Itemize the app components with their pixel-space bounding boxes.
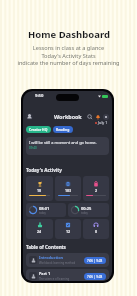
button[interactable]: Search (87, 114, 93, 120)
staticText: 24 (37, 229, 42, 234)
staticText: Reading (56, 127, 70, 132)
button[interactable]: Reading (53, 126, 73, 133)
staticText: Introduction (39, 255, 64, 260)
button[interactable]: 0 (83, 219, 109, 239)
staticText: I will be still a moment and go home. (29, 140, 97, 145)
button[interactable]: Notifications (95, 114, 101, 120)
button[interactable]: More (103, 114, 109, 120)
button[interactable]: 08:01 (26, 203, 66, 217)
button[interactable]: Creator HQ (26, 126, 51, 133)
button[interactable]: 183 (55, 176, 81, 201)
staticText: 183 (65, 188, 72, 193)
button[interactable]: 7:06 | 9:28 (84, 273, 106, 280)
staticText: July 1 (98, 120, 108, 125)
staticText: 2 (95, 188, 98, 193)
button[interactable]: Part 1 (26, 269, 109, 281)
staticText: The science of learning (39, 277, 70, 281)
staticText: 9:50 (35, 93, 44, 99)
staticText: Today's Activity (26, 167, 62, 173)
button[interactable]: 00:25 (68, 203, 109, 217)
button[interactable]: Profile (26, 113, 33, 120)
staticText: Part 1 (39, 271, 51, 276)
staticText: today (39, 211, 46, 215)
staticText: 0 (95, 229, 98, 234)
button[interactable]: 24 (26, 219, 53, 239)
staticText: 10 (37, 188, 42, 193)
staticText: Creator HQ (29, 127, 48, 132)
staticText: 00:25 (81, 206, 92, 211)
button[interactable]: 2 (83, 176, 109, 201)
staticText: Table of Contents (26, 244, 66, 250)
staticText: 12 (66, 229, 71, 234)
staticText: 7:06 | 9:28 (87, 275, 103, 279)
staticText: Workbook (54, 113, 82, 120)
button[interactable]: 12 (55, 219, 81, 239)
staticText: 7:06 | 9:28 (87, 259, 103, 263)
button[interactable]: 10 (26, 176, 53, 201)
button[interactable]: 7:06 | 9:28 (84, 257, 106, 264)
staticText: Lessons in class at a glance Today's Act… (17, 44, 120, 66)
button[interactable]: I will be still a moment and go home. (26, 137, 109, 155)
staticText: today (81, 211, 88, 215)
button[interactable]: Introduction (26, 253, 109, 267)
staticText: 09:40 (29, 146, 37, 150)
staticText: Home Dashboard (28, 28, 110, 41)
staticText: Workbook learning method (39, 261, 76, 265)
staticText: 08:01 (39, 206, 50, 211)
